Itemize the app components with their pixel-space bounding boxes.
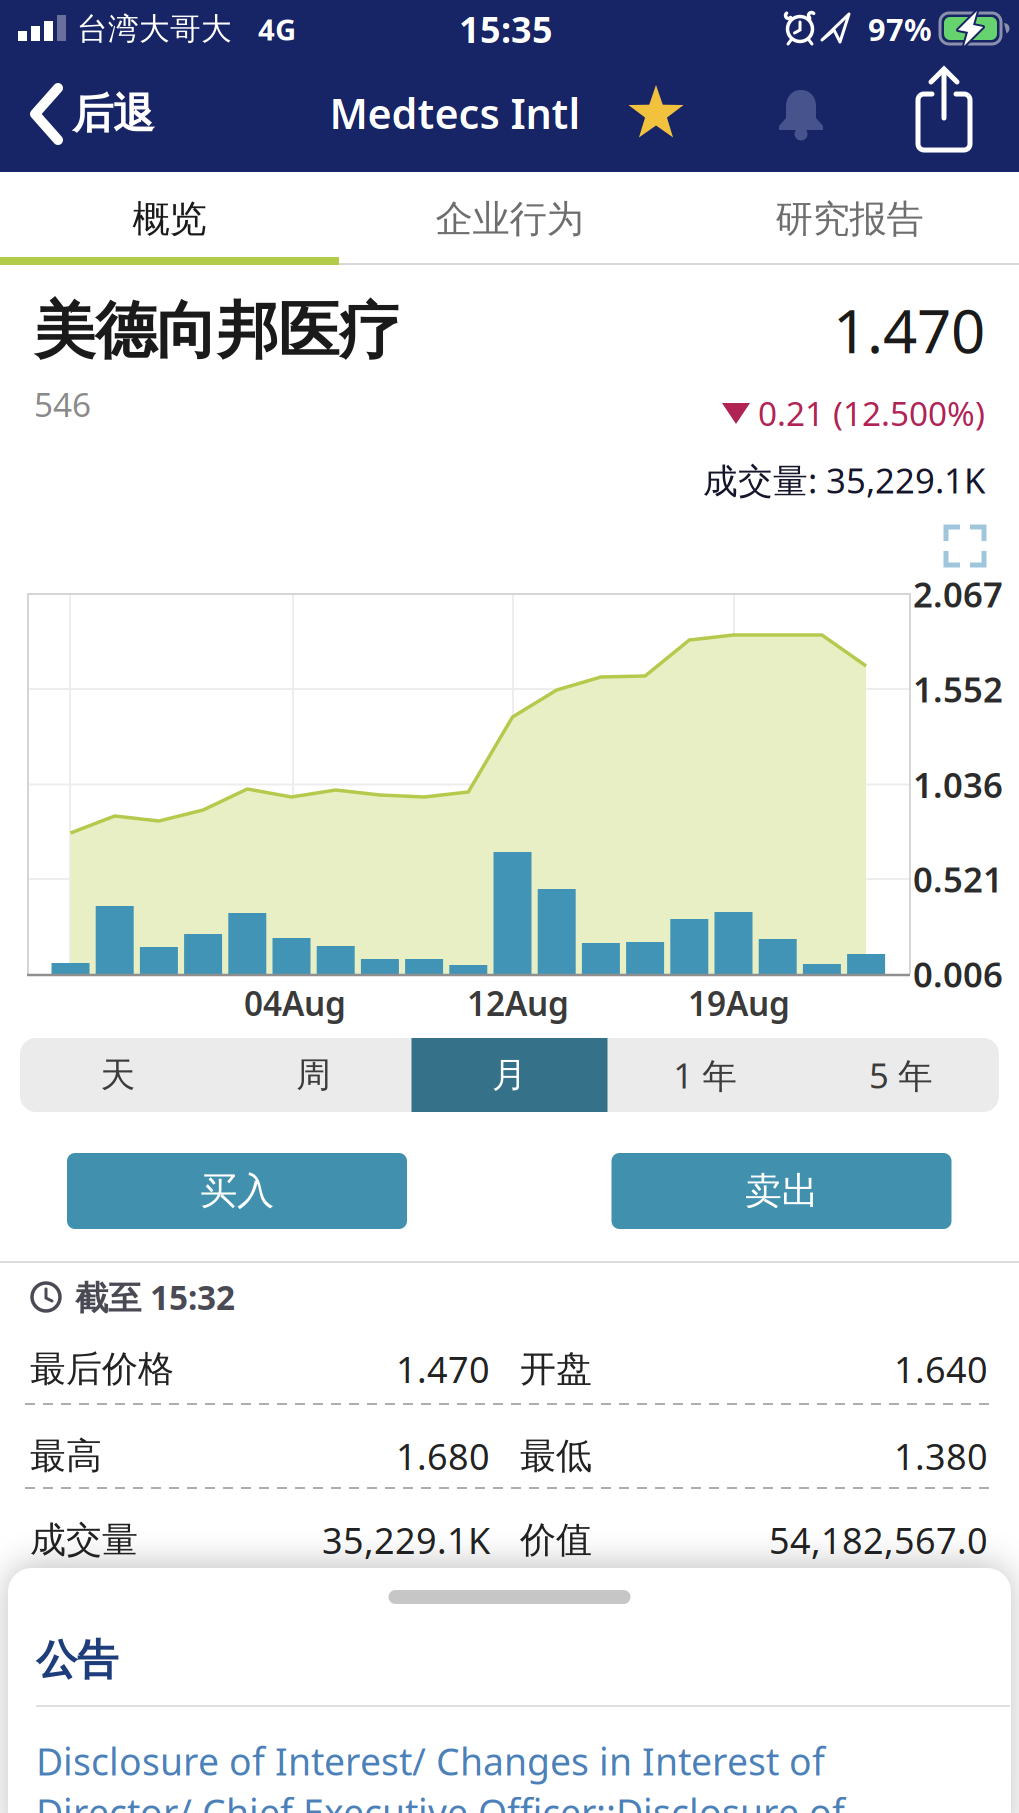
button[interactable]: 月: [412, 1038, 607, 1112]
button[interactable]: Notifications: [769, 83, 833, 147]
staticText: 1 年: [673, 1052, 737, 1098]
staticText: 买入: [200, 1168, 274, 1214]
staticText: 19Aug: [688, 981, 790, 1025]
staticText: 开盘: [520, 1347, 592, 1391]
staticText: 1.036: [913, 761, 1003, 807]
button[interactable]: 天: [20, 1038, 215, 1112]
staticText: 1.470: [396, 1345, 490, 1393]
button[interactable]: Favorite: [624, 80, 688, 144]
staticText: 截至 15:32: [75, 1275, 235, 1319]
staticText: 周: [296, 1054, 331, 1096]
button[interactable]: 5 年: [804, 1038, 999, 1112]
staticText: 企业行为: [435, 196, 583, 242]
staticText: 概览: [132, 196, 206, 242]
staticText: 台湾大哥大: [77, 10, 232, 48]
staticText: 最低: [520, 1434, 592, 1478]
staticText: 546: [34, 382, 91, 426]
staticText: 美德向邦医疗: [34, 293, 400, 369]
staticText: Disclosure of Interest/ Changes in Inter…: [36, 1736, 825, 1786]
staticText: 1.552: [913, 666, 1003, 712]
button[interactable]: Share: [894, 60, 994, 172]
staticText: 1.680: [396, 1432, 490, 1480]
staticText: 1.640: [894, 1345, 988, 1393]
staticText: 1.470: [833, 290, 985, 370]
staticText: 35,229.1K: [322, 1516, 490, 1564]
staticText: 15:35: [459, 5, 553, 53]
staticText: 月: [492, 1054, 527, 1096]
button[interactable]: 1 年: [608, 1038, 803, 1112]
staticText: 后退: [72, 89, 154, 139]
staticText: 最后价格: [30, 1347, 174, 1391]
staticText: 成交量: 35,229.1K: [703, 457, 985, 503]
staticText: 04Aug: [244, 981, 346, 1025]
staticText: 12Aug: [467, 981, 569, 1025]
staticText: 成交量: [30, 1518, 138, 1562]
button[interactable]: 概览: [0, 173, 339, 265]
button[interactable]: Disclosure of Interest/ Changes in Inter…: [0, 0, 1019, 1813]
button[interactable]: 卖出: [611, 1153, 951, 1229]
staticText: 天: [100, 1054, 135, 1096]
staticText: 价值: [520, 1518, 592, 1562]
staticText: 1.380: [894, 1432, 988, 1480]
staticText: Medtecs Intl: [329, 86, 580, 140]
staticText: 4G: [258, 9, 296, 48]
button[interactable]: Fullscreen chart: [943, 524, 987, 568]
staticText: 研究报告: [775, 196, 923, 242]
staticText: 97%: [868, 9, 932, 49]
staticText: 0.521: [913, 856, 1003, 902]
button[interactable]: 周: [216, 1038, 411, 1112]
button[interactable]: 买入: [67, 1153, 407, 1229]
staticText: 卖出: [744, 1168, 818, 1214]
staticText: 0.21 (12.500%): [758, 391, 985, 435]
staticText: 0.006: [913, 951, 1003, 997]
staticText: Director/ Chief Executive Officer::Discl…: [36, 1787, 845, 1813]
staticText: 公告: [36, 1635, 118, 1685]
staticText: 5 年: [869, 1052, 933, 1098]
staticText: 54,182,567.0: [769, 1516, 988, 1564]
button[interactable]: 研究报告: [679, 173, 1019, 265]
button[interactable]: 企业行为: [339, 173, 679, 265]
button[interactable]: Back: [0, 58, 220, 170]
staticText: 2.067: [913, 571, 1003, 617]
staticText: 最高: [30, 1434, 102, 1478]
